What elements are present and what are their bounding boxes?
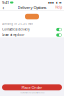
button[interactable]: Back	[1, 5, 5, 10]
button[interactable]: Place Order	[2, 84, 62, 90]
staticText: You won't be charged until checkout	[20, 92, 44, 93]
staticText: ‹	[2, 4, 4, 11]
staticText: Place Order	[21, 85, 42, 90]
staticText: Leave at my door	[2, 33, 24, 37]
button[interactable]: Help	[55, 5, 62, 10]
staticText: ▪▪▪ ◖ ▬	[48, 1, 62, 4]
button[interactable]: Contactless delivery	[2, 27, 62, 32]
staticText: Help	[55, 6, 62, 9]
staticText: Contactless delivery	[2, 28, 29, 31]
button[interactable]: Leave at my door	[2, 32, 62, 38]
staticText: 9:41	[2, 0, 9, 5]
staticText: Delivery Options	[17, 5, 46, 10]
staticText: Arriving in 25–35 min	[2, 22, 33, 26]
